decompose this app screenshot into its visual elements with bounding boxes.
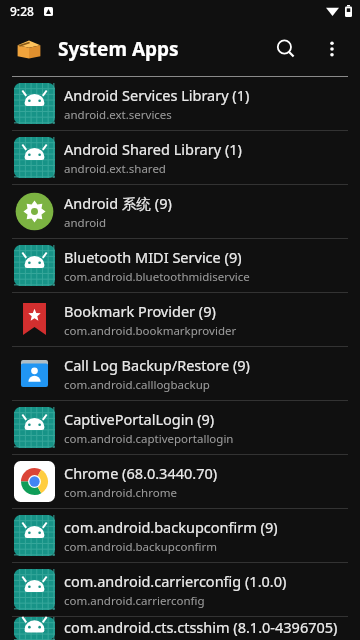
button[interactable]: com.android.carrierconfig (1.0.0): [0, 563, 360, 616]
staticText: com.android.calllogbackup: [64, 377, 210, 393]
staticText: android: [64, 215, 107, 231]
staticText: Android Services Library (1): [64, 85, 250, 105]
staticText: 9:28: [10, 3, 34, 19]
button[interactable]: Search: [262, 25, 310, 73]
button[interactable]: Bluetooth MIDI Service (9): [0, 239, 360, 292]
staticText: android.ext.shared: [64, 161, 166, 177]
staticText: com.android.carrierconfig: [64, 593, 205, 609]
staticText: com.android.chrome: [64, 485, 177, 501]
button[interactable]: More options: [310, 27, 354, 71]
staticText: com.android.carrierconfig (1.0.0): [64, 571, 287, 591]
staticText: Bluetooth MIDI Service (9): [64, 247, 242, 267]
staticText: com.android.bluetoothmidiservice: [64, 269, 250, 285]
button[interactable]: Call Log Backup/Restore (9): [0, 347, 360, 400]
staticText: Chrome (68.0.3440.70): [64, 463, 218, 483]
staticText: android.ext.services: [64, 107, 172, 123]
staticText: Bookmark Provider (9): [64, 301, 216, 321]
staticText: com.android.backupconfirm (9): [64, 517, 278, 537]
staticText: Android 系统 (9): [64, 193, 172, 213]
button[interactable]: Android 系统 (9): [0, 185, 360, 238]
button[interactable]: Android Services Library (1): [0, 77, 360, 130]
button[interactable]: com.android.cts.ctsshim (8.1.0-4396705): [0, 617, 360, 640]
staticText: Call Log Backup/Restore (9): [64, 355, 250, 375]
staticText: Android Shared Library (1): [64, 139, 242, 159]
staticText: com.android.backupconfirm: [64, 539, 217, 555]
staticText: com.android.bookmarkprovider: [64, 323, 237, 339]
staticText: CaptivePortalLogin (9): [64, 409, 215, 429]
button[interactable]: CaptivePortalLogin (9): [0, 401, 360, 454]
staticText: System Apps: [58, 36, 262, 62]
button[interactable]: com.android.backupconfirm (9): [0, 509, 360, 562]
button[interactable]: Android Shared Library (1): [0, 131, 360, 184]
staticText: com.android.cts.ctsshim (8.1.0-4396705): [64, 617, 338, 637]
staticText: com.android.captiveportallogin: [64, 431, 234, 447]
button[interactable]: Chrome (68.0.3440.70): [0, 455, 360, 508]
button[interactable]: Bookmark Provider (9): [0, 293, 360, 346]
